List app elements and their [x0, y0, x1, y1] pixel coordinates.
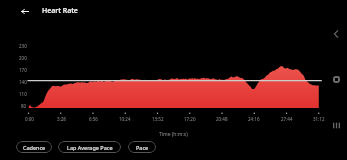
staticText: Lap Average Pace: [67, 144, 113, 151]
button[interactable]: Pace: [128, 141, 156, 153]
staticText: 3:28: [57, 116, 66, 122]
staticText: 13:52: [152, 116, 164, 122]
staticText: 200: [19, 55, 27, 61]
staticText: 230: [19, 43, 27, 49]
button[interactable]: Back: [329, 27, 343, 41]
button[interactable]: Back: [16, 2, 34, 20]
staticText: Time (h:m:s): [159, 131, 188, 138]
staticText: Heart Rate: [42, 6, 78, 16]
button[interactable]: Home: [329, 72, 343, 86]
staticText: 140: [19, 79, 27, 85]
staticText: 0:00: [25, 116, 34, 122]
staticText: Cadence: [23, 144, 46, 151]
staticText: 17:20: [184, 116, 196, 122]
staticText: 10:24: [119, 116, 131, 122]
staticText: 27:44: [281, 116, 293, 122]
staticText: Pace: [136, 144, 149, 151]
staticText: 80: [21, 103, 27, 109]
staticText: 31:12: [313, 116, 325, 122]
staticText: 170: [19, 67, 27, 73]
button[interactable]: Recent apps: [329, 118, 343, 132]
button[interactable]: Cadence: [16, 141, 52, 153]
staticText: 6:56: [89, 116, 98, 122]
staticText: 24:16: [248, 116, 260, 122]
button[interactable]: Lap Average Pace: [58, 141, 121, 153]
staticText: 20:48: [216, 116, 228, 122]
staticText: 110: [19, 91, 27, 97]
